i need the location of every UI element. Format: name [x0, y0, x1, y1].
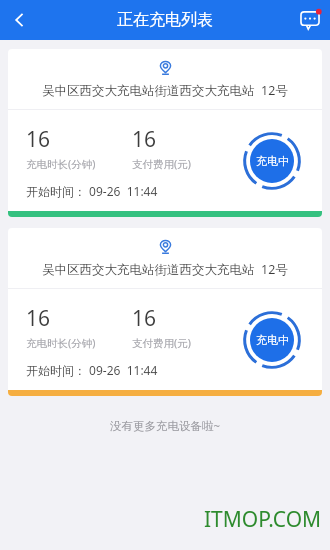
- staticText: 充电时长(分钟): [26, 157, 96, 171]
- button[interactable]: 吴中区西交大充电站街道西交大充电站 12号: [8, 49, 322, 217]
- button[interactable]: 充电中: [241, 130, 303, 192]
- staticText: 吴中区西交大充电站街道西交大充电站 12号: [8, 261, 322, 278]
- staticText: 16: [26, 125, 51, 154]
- staticText: 没有更多充电设备啦~: [0, 418, 330, 434]
- button[interactable]: Messages: [290, 0, 330, 40]
- button[interactable]: 充电中: [241, 309, 303, 371]
- staticText: 开始时间： 09-26 11:44: [26, 362, 158, 378]
- staticText: 正在充电列表: [117, 10, 213, 30]
- staticText: 吴中区西交大充电站街道西交大充电站 12号: [8, 82, 322, 99]
- staticText: 支付费用(元): [132, 336, 191, 350]
- staticText: 充电中: [256, 333, 289, 347]
- staticText: 16: [132, 304, 157, 333]
- staticText: 充电中: [256, 154, 289, 168]
- staticText: ITMOP.COM: [204, 505, 322, 534]
- staticText: 16: [132, 125, 157, 154]
- staticText: 开始时间： 09-26 11:44: [26, 183, 158, 199]
- button[interactable]: 吴中区西交大充电站街道西交大充电站 12号: [8, 228, 322, 396]
- staticText: 支付费用(元): [132, 157, 191, 171]
- staticText: 16: [26, 304, 51, 333]
- staticText: 充电时长(分钟): [26, 336, 96, 350]
- button[interactable]: Back: [0, 0, 40, 40]
